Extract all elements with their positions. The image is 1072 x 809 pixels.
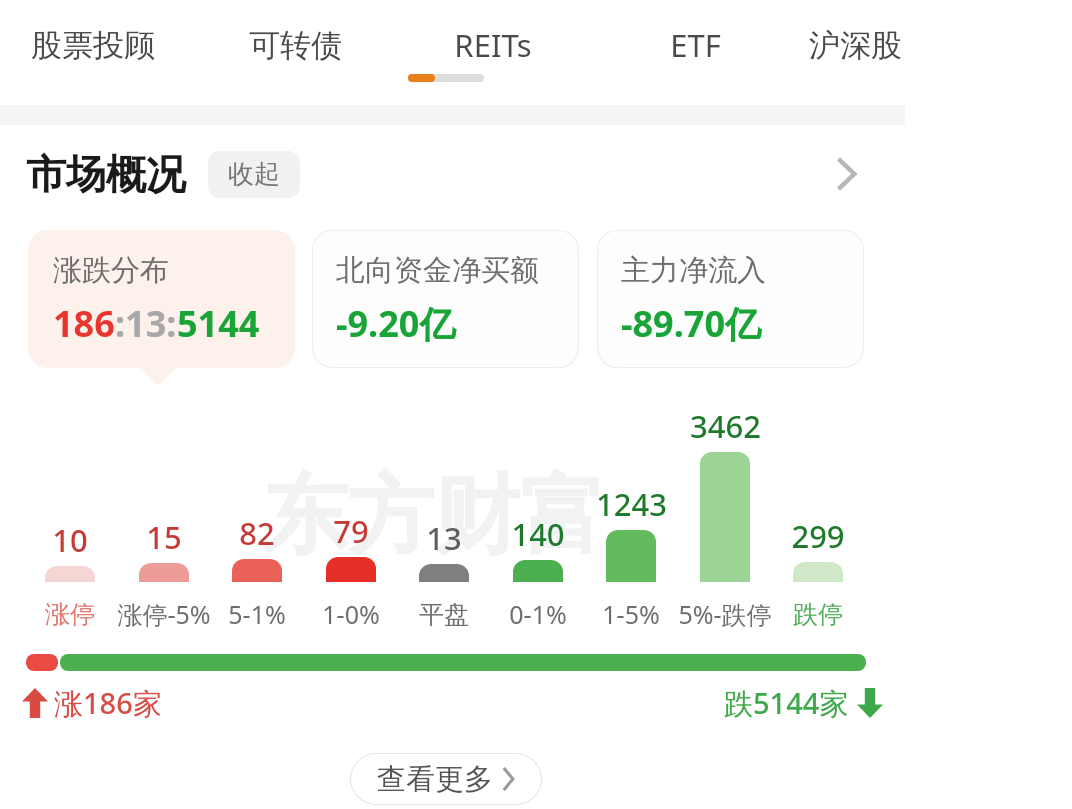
staticText: REITs xyxy=(454,24,532,66)
staticText: -89.70亿 xyxy=(621,299,762,348)
button[interactable]: 展开市场概况 xyxy=(812,142,880,206)
staticText: 0-1% xyxy=(509,597,567,631)
button[interactable]: 跌5144家 xyxy=(724,683,883,723)
staticText: 186 xyxy=(53,299,115,348)
staticText: 涨停-5% xyxy=(117,597,211,631)
staticText: 跌5144家 xyxy=(724,683,849,723)
button[interactable]: 涨186家 xyxy=(22,683,162,723)
staticText: 15 xyxy=(146,516,182,558)
staticText: 收起 xyxy=(228,158,280,191)
staticText: 涨跌分布 xyxy=(53,252,169,289)
staticText: 1-5% xyxy=(602,597,660,631)
staticText: 主力净流入 xyxy=(621,252,766,289)
staticText: 5%-跌停 xyxy=(678,597,772,631)
staticText: 1-0% xyxy=(322,597,380,631)
staticText: 涨186家 xyxy=(54,683,162,723)
button[interactable]: 股票投顾 xyxy=(0,14,198,76)
staticText: 市场概况 xyxy=(26,149,186,199)
button[interactable]: ETF xyxy=(590,14,800,76)
staticText: 跌停 xyxy=(793,599,843,630)
staticText: -9.20亿 xyxy=(336,299,456,348)
button[interactable]: 跌停 xyxy=(748,596,888,632)
button[interactable]: 可转债 xyxy=(190,14,400,76)
button[interactable]: 5%-跌停 xyxy=(655,596,795,632)
button[interactable]: 0-1% xyxy=(468,596,608,632)
staticText: 可转债 xyxy=(249,26,342,65)
staticText: 140 xyxy=(511,513,565,555)
button[interactable]: 收起 xyxy=(208,151,300,198)
button[interactable]: 沪深股 xyxy=(750,14,960,76)
staticText: 13 xyxy=(426,517,462,559)
staticText: :13: xyxy=(115,299,177,348)
button[interactable]: 主力净流入 xyxy=(597,230,864,368)
staticText: 涨停 xyxy=(45,599,95,630)
staticText: 查看更多 xyxy=(377,761,493,798)
button[interactable]: 北向资金净买额 xyxy=(312,230,579,368)
staticText: 东方财富 xyxy=(262,462,606,570)
staticText: 平盘 xyxy=(419,599,469,630)
staticText: 沪深股 xyxy=(809,26,902,65)
button[interactable]: 平盘 xyxy=(374,596,514,632)
button[interactable]: 1-0% xyxy=(281,596,421,632)
button[interactable]: 涨停 xyxy=(0,596,140,632)
staticText: 3462 xyxy=(690,405,761,447)
staticText: 79 xyxy=(333,510,369,552)
staticText: 北向资金净买额 xyxy=(336,252,539,289)
button[interactable]: REITs xyxy=(388,14,598,76)
staticText: 5144 xyxy=(177,299,260,348)
staticText: 299 xyxy=(791,515,845,557)
staticText: 股票投顾 xyxy=(31,26,155,65)
button[interactable]: 查看更多 xyxy=(350,753,542,805)
staticText: ETF xyxy=(670,24,721,66)
staticText: 10 xyxy=(52,519,88,561)
button[interactable]: 5-1% xyxy=(187,596,327,632)
button[interactable]: 1-5% xyxy=(561,596,701,632)
staticText: 5-1% xyxy=(228,597,286,631)
button[interactable]: 涨停-5% xyxy=(94,596,234,632)
staticText: 1243 xyxy=(596,483,667,525)
button[interactable]: 涨跌分布 xyxy=(28,230,295,368)
staticText: 82 xyxy=(239,512,275,554)
